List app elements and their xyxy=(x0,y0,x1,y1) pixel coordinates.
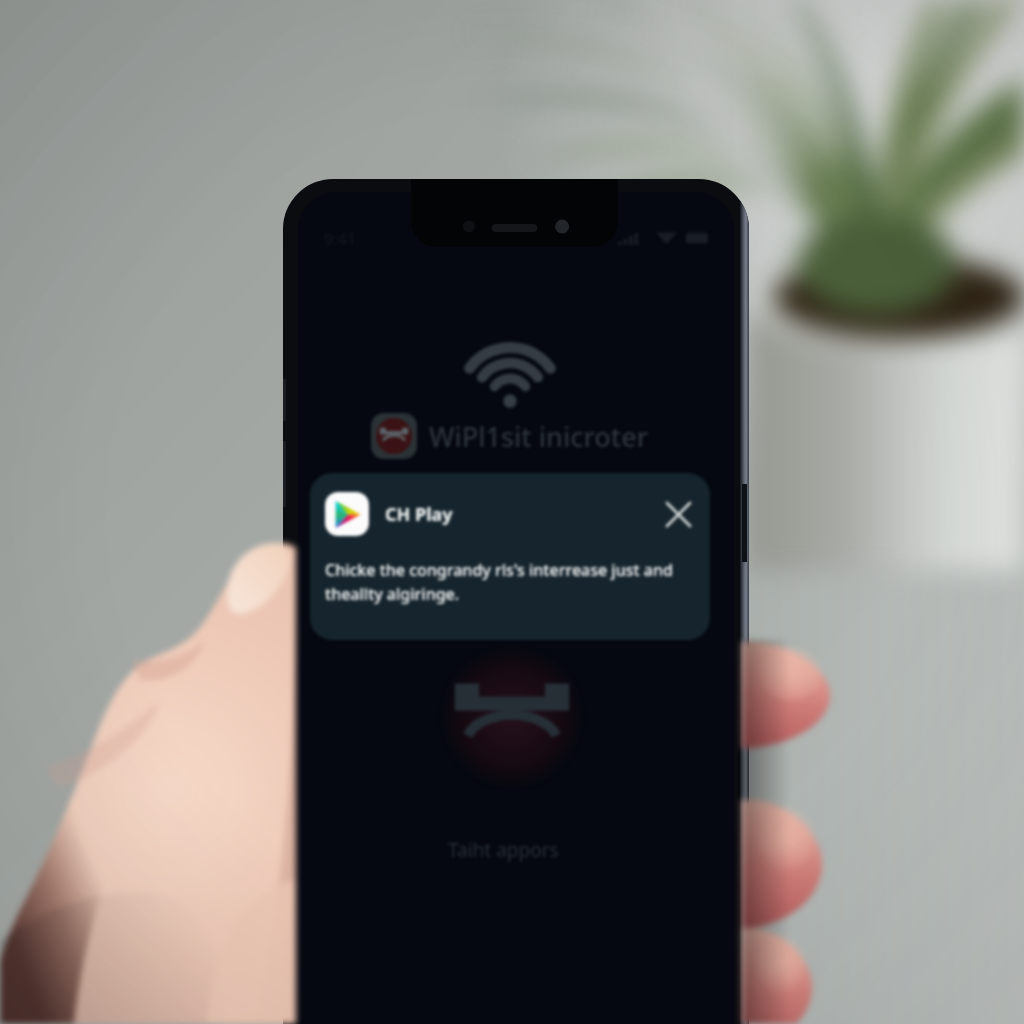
staticText: Chicke the congrandy rls's interrease ju… xyxy=(325,559,673,605)
staticText: Taiht appors xyxy=(448,837,559,863)
button[interactable]: Dismiss notification xyxy=(661,497,695,531)
button[interactable]: CH Play xyxy=(310,473,710,640)
staticText: WiPl1sit inicroter xyxy=(429,418,649,455)
staticText: CH Play xyxy=(385,502,453,527)
